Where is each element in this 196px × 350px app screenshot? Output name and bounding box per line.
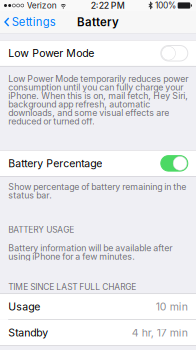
staticText: Battery xyxy=(77,15,119,29)
staticText: Low Power Mode xyxy=(8,47,94,60)
staticText: Low Power Mode temporarily reduces power… xyxy=(8,74,188,126)
button[interactable]: Low Power Mode xyxy=(0,41,196,66)
button[interactable]: Battery Percentage xyxy=(0,151,196,176)
staticText: 100% xyxy=(155,0,176,11)
staticText: TIME SINCE LAST FULL CHARGE xyxy=(8,282,136,292)
button[interactable]: Standby xyxy=(0,320,196,345)
staticText: Verizon xyxy=(27,0,57,11)
staticText: BATTERY USAGE xyxy=(8,225,74,235)
button[interactable]: Settings xyxy=(0,11,62,33)
button[interactable]: Usage xyxy=(0,294,196,319)
staticText: Usage xyxy=(8,300,40,313)
staticText: Show percentage of battery remaining in … xyxy=(8,183,186,200)
staticText: Standby xyxy=(8,326,48,339)
staticText: 10 min xyxy=(156,300,188,313)
staticText: Settings xyxy=(12,15,56,29)
staticText: Battery Percentage xyxy=(8,157,102,170)
staticText: Battery information will be available af… xyxy=(8,244,172,261)
staticText: 4 hr, 17 min xyxy=(132,326,188,339)
staticText: 2:22 PM xyxy=(91,0,125,11)
